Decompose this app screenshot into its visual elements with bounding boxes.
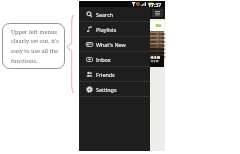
button[interactable]: Inbox xyxy=(79,52,150,66)
staticText: Upper left menus clearly set out, it's e… xyxy=(11,28,59,65)
staticText: 17:37 xyxy=(148,1,162,7)
staticText: Playlists xyxy=(96,26,117,33)
staticText: Settings xyxy=(96,86,117,93)
button[interactable]: Playlists xyxy=(79,22,150,36)
button[interactable]: Overflow menu xyxy=(152,9,163,17)
staticText: Search xyxy=(96,11,114,18)
staticText: What's New xyxy=(96,41,126,48)
staticText: Inbox xyxy=(96,56,111,63)
button[interactable]: Settings xyxy=(79,82,150,96)
staticText: Friends xyxy=(96,71,115,78)
button[interactable]: What's New xyxy=(79,37,150,51)
button[interactable]: Search xyxy=(79,7,150,21)
button[interactable]: Friends xyxy=(79,67,150,81)
